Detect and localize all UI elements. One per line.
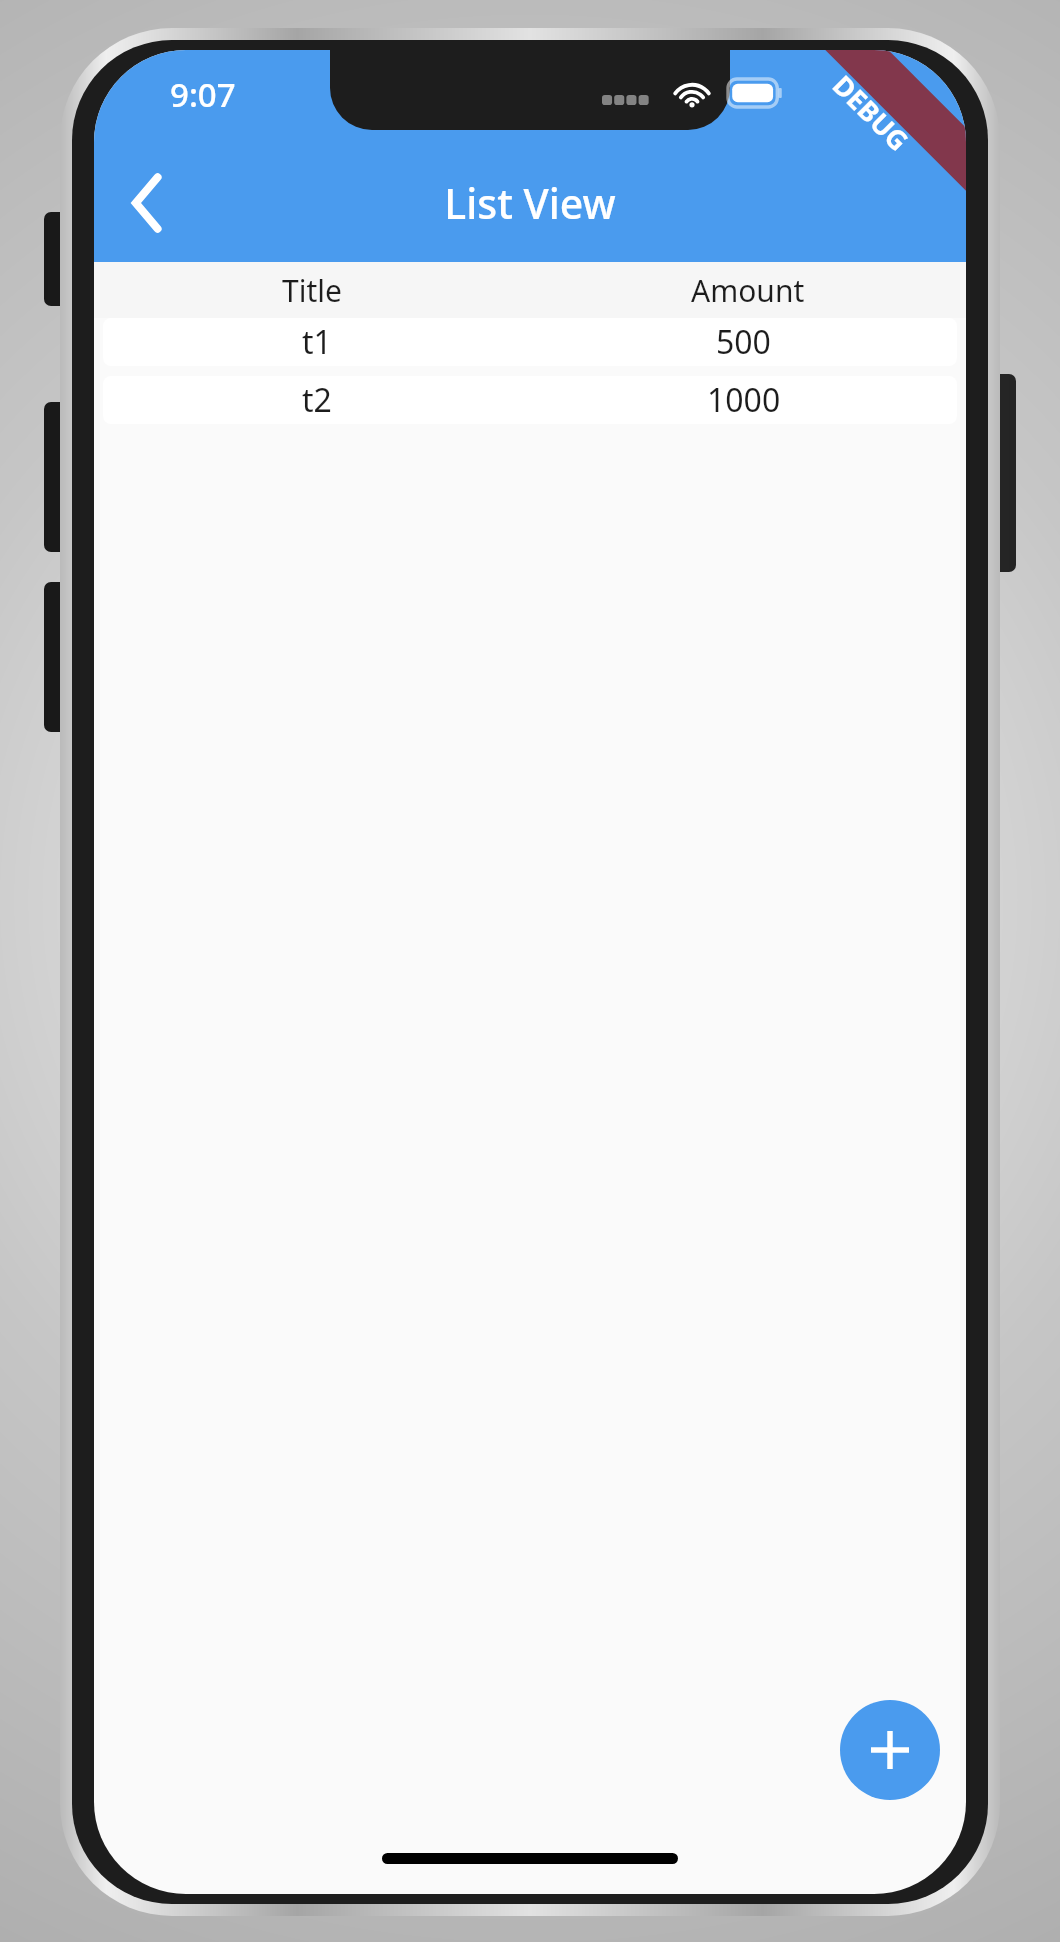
staticText: 1000 xyxy=(707,378,781,422)
staticText: Title xyxy=(282,270,342,311)
staticText: t1 xyxy=(302,320,332,364)
staticText: t2 xyxy=(302,378,332,422)
staticText: 500 xyxy=(716,320,771,364)
staticText: Amount xyxy=(691,270,805,311)
button[interactable]: t1 xyxy=(103,318,957,366)
staticText: 9:07 xyxy=(170,72,236,117)
button[interactable]: t2 xyxy=(103,376,957,424)
staticText: List View xyxy=(444,175,616,231)
button[interactable]: Add xyxy=(840,1700,940,1800)
button[interactable]: Back xyxy=(100,155,196,251)
staticText: DEBUG xyxy=(825,67,917,159)
